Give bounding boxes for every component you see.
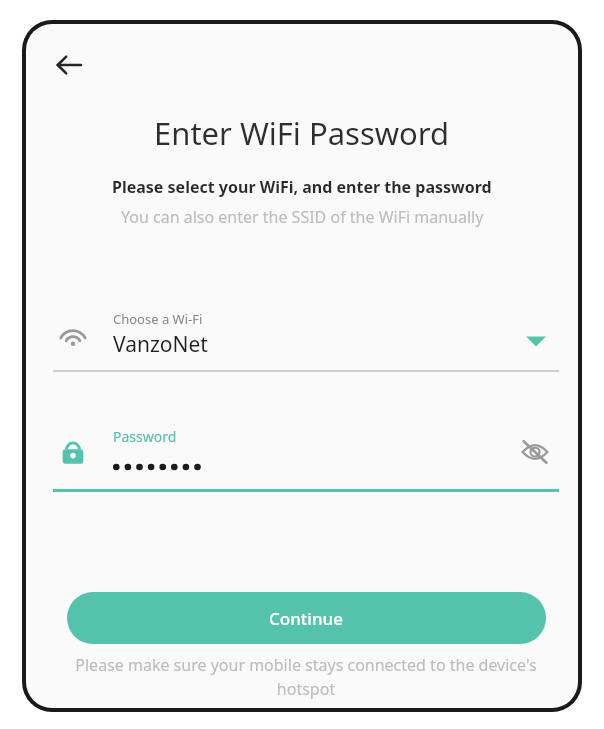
button[interactable]: Password [53, 414, 559, 496]
button[interactable]: Back [45, 41, 93, 89]
staticText: Enter WiFi Password [154, 112, 450, 154]
staticText: VanzoNet [113, 330, 208, 359]
button[interactable]: Show password [513, 430, 557, 474]
staticText: Password [113, 427, 177, 446]
button[interactable]: Continue [67, 592, 546, 644]
staticText: Choose a Wi-Fi [113, 310, 203, 328]
staticText: Please select your WiFi, and enter the p… [112, 176, 492, 198]
other: Open network list [519, 324, 553, 358]
staticText: Continue [269, 607, 344, 630]
staticText: Please make sure your mobile stays conne… [48, 654, 564, 700]
staticText: You can also enter the SSID of the WiFi … [121, 206, 484, 228]
button[interactable]: Choose a Wi-Fi [53, 302, 559, 374]
